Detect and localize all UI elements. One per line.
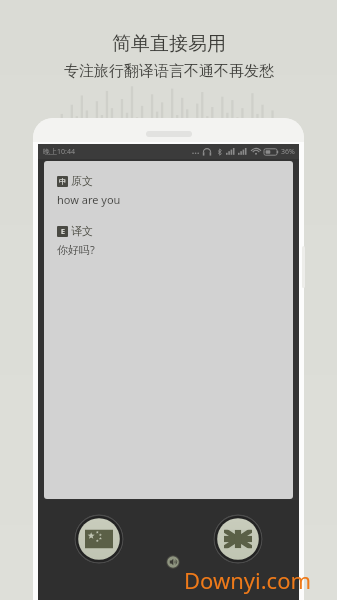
- staticText: 译文: [71, 224, 93, 238]
- staticText: 中: [59, 177, 66, 186]
- staticText: 你好吗?: [57, 242, 95, 257]
- button[interactable]: Chinese: [74, 514, 124, 564]
- staticText: 原文: [71, 174, 93, 188]
- staticText: how are you: [57, 192, 121, 207]
- staticText: Downyi.com: [184, 565, 312, 595]
- staticText: 36%: [281, 147, 295, 157]
- staticText: E: [61, 227, 65, 237]
- staticText: 专注旅行翻译语言不通不再发愁: [64, 62, 274, 81]
- staticText: 晚上10:44: [43, 147, 75, 157]
- button[interactable]: Sound: [166, 555, 180, 569]
- staticText: 简单直接易用: [112, 32, 226, 56]
- button[interactable]: English: [213, 514, 263, 564]
